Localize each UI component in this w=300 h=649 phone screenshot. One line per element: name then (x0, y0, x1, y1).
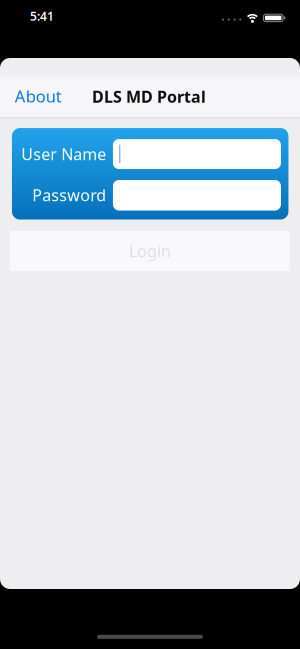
staticText: DLS MD Portal (92, 86, 206, 107)
staticText: Password (32, 184, 106, 206)
button[interactable] (113, 180, 281, 210)
staticText: Login (129, 240, 171, 262)
staticText: 5:41 (30, 8, 54, 24)
staticText: About (15, 85, 62, 107)
button[interactable] (113, 139, 281, 169)
button[interactable]: About (15, 85, 85, 107)
staticText: User Name (21, 143, 106, 165)
